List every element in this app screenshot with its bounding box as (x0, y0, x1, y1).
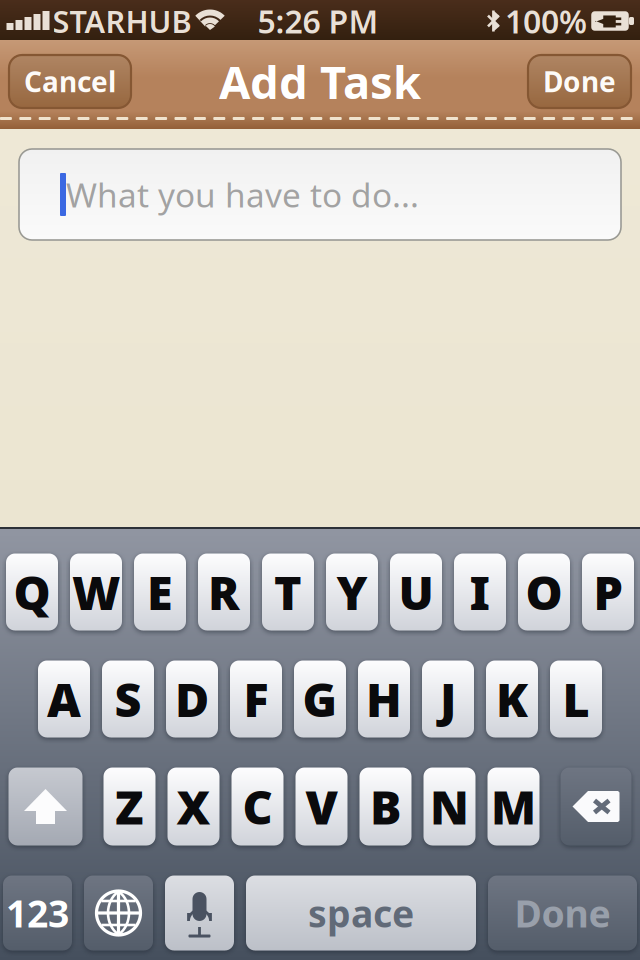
button[interactable]: K (486, 660, 538, 737)
button[interactable]: H (358, 660, 410, 737)
staticText: H (366, 668, 402, 730)
button[interactable]: O (518, 553, 570, 630)
button[interactable]: space (246, 875, 476, 950)
button[interactable]: T (262, 553, 314, 630)
button[interactable]: B (359, 767, 411, 845)
button[interactable]: N (423, 767, 475, 845)
staticText: 5:26 PM (257, 0, 378, 42)
button[interactable]: G (294, 660, 346, 737)
staticText: Q (13, 561, 50, 623)
staticText: I (469, 561, 490, 623)
button[interactable]: Next keyboard (84, 875, 153, 950)
staticText: W (72, 561, 120, 623)
button[interactable]: I (454, 553, 506, 630)
staticText: Add Task (219, 51, 421, 112)
button[interactable]: J (422, 660, 474, 737)
staticText: P (593, 561, 622, 623)
staticText: L (562, 668, 589, 730)
button[interactable]: A (38, 660, 90, 737)
staticText: X (176, 775, 210, 837)
staticText: V (305, 775, 337, 837)
staticText: J (440, 668, 456, 730)
button[interactable]: Done (488, 875, 637, 950)
button[interactable]: M (487, 767, 539, 845)
button[interactable]: W (70, 553, 122, 630)
button[interactable]: F (230, 660, 282, 737)
button[interactable]: P (582, 553, 634, 630)
staticText: R (208, 561, 240, 623)
button[interactable]: S (102, 660, 154, 737)
staticText: Y (336, 561, 367, 623)
staticText: S (114, 668, 141, 730)
staticText: Cancel (24, 63, 116, 100)
staticText: Z (115, 775, 144, 837)
button[interactable]: Dictate (165, 875, 234, 950)
staticText: C (242, 775, 272, 837)
button[interactable]: U (390, 553, 442, 630)
button[interactable]: Shift (8, 767, 82, 845)
staticText: N (430, 775, 469, 837)
staticText: T (274, 561, 302, 623)
staticText: A (47, 668, 81, 730)
button[interactable]: R (198, 553, 250, 630)
button[interactable]: C (231, 767, 283, 845)
button[interactable]: Z (103, 767, 155, 845)
button[interactable]: Cancel (9, 55, 131, 108)
staticText: Done (514, 888, 610, 938)
button[interactable]: Delete (560, 767, 631, 845)
staticText: B (370, 775, 401, 837)
staticText: K (496, 668, 528, 730)
button[interactable]: Done (528, 55, 631, 108)
button[interactable]: 123 (3, 875, 72, 950)
staticText: M (491, 775, 536, 837)
staticText: D (175, 668, 209, 730)
staticText: 123 (6, 888, 69, 938)
button[interactable]: V (295, 767, 347, 845)
staticText: U (398, 561, 433, 623)
button[interactable]: X (167, 767, 219, 845)
button[interactable]: D (166, 660, 218, 737)
staticText: Done (543, 63, 616, 100)
staticText: F (243, 668, 268, 730)
staticText: What you have to do... (66, 172, 419, 217)
button[interactable]: L (550, 660, 602, 737)
button[interactable]: Q (6, 553, 58, 630)
staticText: STARHUB (52, 1, 191, 41)
staticText: space (308, 888, 414, 938)
button[interactable]: What you have to do... (19, 149, 621, 240)
staticText: G (302, 668, 337, 730)
button[interactable]: Y (326, 553, 378, 630)
staticText: O (525, 561, 562, 623)
staticText: E (147, 561, 173, 623)
staticText: 100% (505, 0, 587, 42)
button[interactable]: E (134, 553, 186, 630)
